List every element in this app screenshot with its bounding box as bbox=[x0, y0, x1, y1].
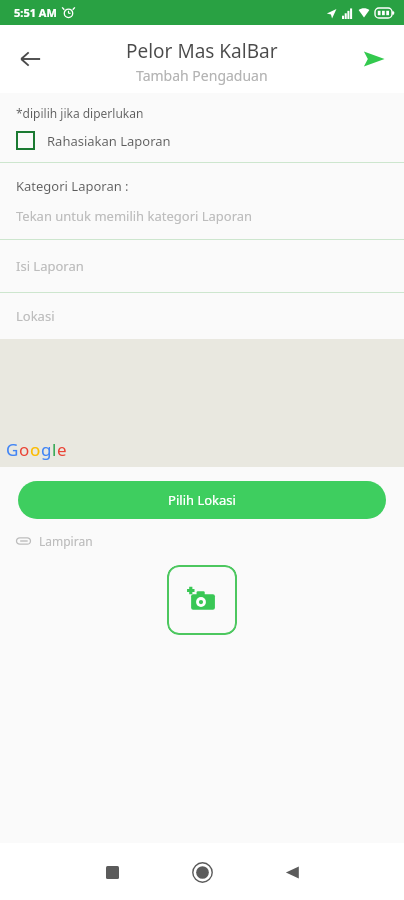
button[interactable]: Lokasi bbox=[0, 293, 404, 339]
staticText: e bbox=[57, 438, 67, 461]
button[interactable]: Isi Laporan bbox=[0, 240, 404, 292]
staticText: Rahasiakan Laporan bbox=[47, 132, 171, 150]
button[interactable]: Home bbox=[175, 845, 229, 899]
staticText: *dipilih jika diperlukan bbox=[16, 105, 144, 121]
button[interactable]: Kategori Laporan : bbox=[0, 163, 404, 239]
button[interactable]: Pilih Lokasi bbox=[18, 481, 386, 519]
button[interactable]: Back bbox=[8, 37, 52, 81]
staticText: Lampiran bbox=[39, 533, 93, 549]
button[interactable]: Recents bbox=[85, 845, 139, 899]
button[interactable]: Add photo bbox=[167, 565, 237, 635]
staticText: Kategori Laporan : bbox=[16, 177, 129, 195]
staticText: l bbox=[52, 438, 57, 461]
button[interactable]: Map bbox=[0, 339, 404, 467]
staticText: 5:51 AM bbox=[14, 5, 57, 20]
staticText: G bbox=[6, 438, 19, 461]
button[interactable]: Send bbox=[352, 37, 396, 81]
staticText: o bbox=[30, 438, 41, 461]
button[interactable]: Back bbox=[265, 845, 319, 899]
staticText: o bbox=[19, 438, 30, 461]
staticText: Tekan untuk memilih kategori Laporan bbox=[16, 207, 253, 225]
staticText: Tambah Pengaduan bbox=[136, 66, 268, 85]
staticText: Pelor Mas KalBar bbox=[126, 38, 278, 64]
staticText: Pilih Lokasi bbox=[168, 491, 236, 509]
button[interactable]: Rahasiakan Laporan bbox=[0, 129, 404, 156]
staticText: g bbox=[41, 438, 52, 461]
staticText: Isi Laporan bbox=[16, 257, 84, 275]
staticText: Lokasi bbox=[16, 307, 55, 325]
